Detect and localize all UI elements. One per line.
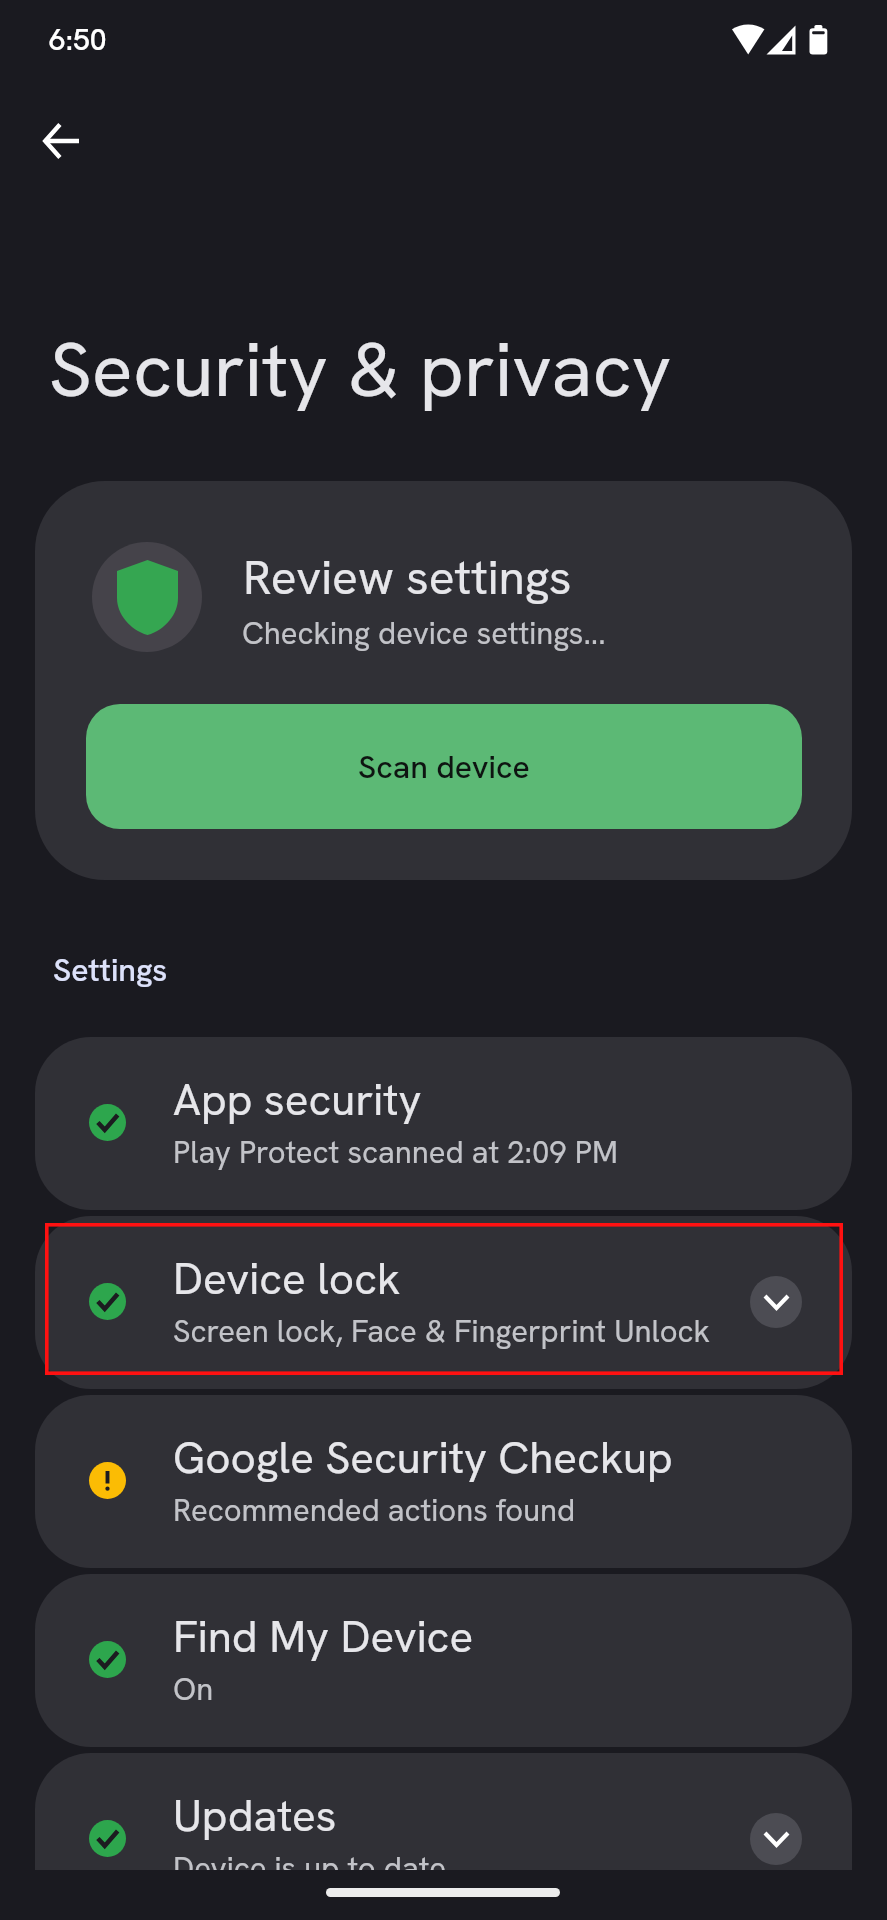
button[interactable]: Scan device [86,704,802,829]
staticText: Play Protect scanned at 2:09 PM [173,1132,618,1172]
button[interactable]: Review settings [35,481,852,880]
button[interactable]: App security [35,1037,852,1210]
button[interactable]: Expand [750,1276,802,1328]
staticText: On [173,1669,214,1709]
staticText: Scan device [358,746,530,788]
staticText: Recommended actions found [173,1490,576,1530]
staticText: Find My Device [173,1608,474,1665]
button[interactable]: Updates [35,1753,852,1920]
button[interactable]: Find My Device [35,1574,852,1747]
button[interactable]: Device lock [35,1216,852,1389]
staticText: Checking device settings... [242,613,606,653]
staticText: Review settings [243,546,572,609]
button[interactable]: Google Security Checkup [35,1395,852,1568]
staticText: Device is up to date [173,1848,446,1888]
staticText: Security & privacy [49,320,672,419]
staticText: App security [173,1071,422,1128]
button[interactable]: Expand [750,1813,802,1865]
staticText: Screen lock, Face & Fingerprint Unlock [173,1311,711,1351]
staticText: Device lock [173,1250,401,1307]
staticText: Settings [53,949,168,991]
staticText: Updates [173,1787,337,1844]
staticText: 6:50 [49,20,107,59]
staticText: Google Security Checkup [173,1429,673,1486]
button[interactable]: Back [22,102,99,179]
